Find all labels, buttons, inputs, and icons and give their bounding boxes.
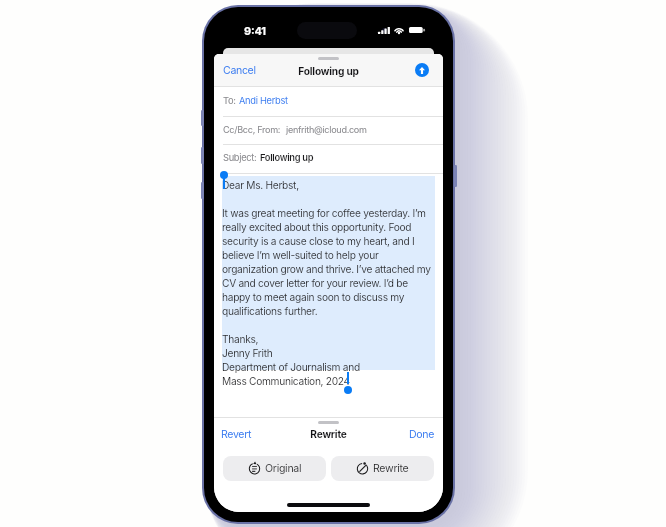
staticText: 9:41 <box>244 24 266 37</box>
staticText: Following up <box>214 65 443 77</box>
staticText: qualifications further. <box>222 305 318 317</box>
staticText: To: <box>223 95 236 106</box>
staticText: It was great meeting for coffee yesterda… <box>222 207 426 219</box>
button[interactable]: Original <box>223 456 326 481</box>
staticText: Following up <box>260 152 314 163</box>
staticText: Jenny Frith <box>222 347 273 359</box>
staticText: really excited about this opportunity. F… <box>222 221 412 233</box>
staticText: Done <box>409 428 435 441</box>
staticText: Original <box>265 462 302 475</box>
staticText: Subject: <box>223 152 257 163</box>
staticText: Andi Herbst <box>239 95 288 106</box>
staticText: Mass Communication, 2024 <box>222 375 350 387</box>
staticText: Rewrite <box>373 462 409 475</box>
button[interactable]: Send message <box>415 63 429 77</box>
staticText: jenfrith@icloud.com <box>286 124 367 135</box>
staticText: Revert <box>221 428 252 441</box>
staticText: Thanks, <box>222 333 259 345</box>
staticText: Department of Journalism and <box>222 361 360 373</box>
staticText: organization grow and thrive. I’ve attac… <box>222 263 431 275</box>
staticText: Rewrite <box>214 428 443 440</box>
staticText: CV and cover letter for your review. I’d… <box>222 277 408 289</box>
button[interactable]: Done <box>404 424 440 445</box>
staticText: security is a cause close to my heart, a… <box>222 235 415 247</box>
staticText: happy to meet again soon to discuss my <box>222 291 405 303</box>
button[interactable]: Rewrite <box>331 456 434 481</box>
staticText: Cc/Bcc, From: <box>223 124 281 135</box>
button[interactable]: Revert <box>216 424 257 445</box>
staticText: Dear Ms. Herbst, <box>222 179 299 191</box>
button[interactable]: Cancel <box>218 60 261 81</box>
staticText: Cancel <box>223 64 256 77</box>
staticText: believe I’m well-suited to help your <box>222 249 379 261</box>
